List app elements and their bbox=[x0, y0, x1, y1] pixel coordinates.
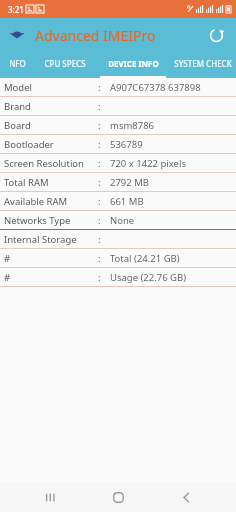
staticText: A907C67378 637898 bbox=[110, 81, 201, 94]
button[interactable]: Screen Resolution bbox=[0, 154, 236, 173]
button[interactable]: Model bbox=[0, 78, 236, 97]
staticText: : bbox=[98, 176, 108, 189]
button[interactable]: Networks Type bbox=[0, 211, 236, 230]
staticText: : bbox=[98, 252, 108, 265]
staticText: Advanced IMEIPro bbox=[35, 26, 156, 45]
button[interactable]: Home bbox=[100, 482, 136, 512]
button[interactable]: # bbox=[0, 249, 236, 268]
staticText: Model bbox=[4, 81, 98, 94]
staticText: 3:21 bbox=[8, 4, 24, 15]
staticText: # bbox=[4, 252, 98, 265]
staticText: 720 x 1422 pixels bbox=[110, 157, 186, 170]
button[interactable]: Refresh bbox=[204, 23, 228, 47]
button[interactable]: NFO bbox=[0, 52, 34, 78]
staticText: DEVICE INFO bbox=[108, 58, 159, 69]
staticText: : bbox=[98, 233, 108, 246]
staticText: Board bbox=[4, 119, 98, 132]
staticText: Internal Storage bbox=[4, 233, 98, 246]
staticText: : bbox=[98, 81, 108, 94]
staticText: : bbox=[98, 195, 108, 208]
button[interactable]: Brand bbox=[0, 97, 236, 116]
button[interactable]: Available RAM bbox=[0, 192, 236, 211]
staticText: Total (24.21 GB) bbox=[110, 252, 180, 265]
staticText: 661 MB bbox=[110, 195, 144, 208]
staticText: 2792 MB bbox=[110, 176, 149, 189]
staticText: msm8786 bbox=[110, 119, 155, 132]
staticText: : bbox=[98, 100, 108, 113]
staticText: 536789 bbox=[110, 138, 143, 151]
staticText: CPU SPECS bbox=[44, 58, 86, 69]
staticText: NFO bbox=[9, 58, 26, 69]
staticText: None bbox=[110, 214, 135, 227]
staticText: Screen Resolution bbox=[4, 157, 98, 170]
button[interactable]: Recent apps bbox=[32, 482, 68, 512]
button[interactable]: DEVICE INFO bbox=[96, 52, 170, 78]
staticText: : bbox=[98, 119, 108, 132]
button[interactable]: SYSTEM CHECK bbox=[170, 52, 236, 78]
staticText: : bbox=[98, 138, 108, 151]
other: App logo bbox=[8, 26, 26, 44]
button[interactable]: CPU SPECS bbox=[34, 52, 96, 78]
staticText: : bbox=[98, 271, 108, 284]
button[interactable]: Total RAM bbox=[0, 173, 236, 192]
staticText: Usage (22.76 GB) bbox=[110, 271, 187, 284]
staticText: Available RAM bbox=[4, 195, 98, 208]
button[interactable]: Internal Storage bbox=[0, 230, 236, 249]
staticText: : bbox=[98, 214, 108, 227]
button[interactable]: Board bbox=[0, 116, 236, 135]
staticText: : bbox=[98, 157, 108, 170]
button[interactable]: # bbox=[0, 268, 236, 287]
staticText: Brand bbox=[4, 100, 98, 113]
staticText: Total RAM bbox=[4, 176, 98, 189]
staticText: Networks Type bbox=[4, 214, 98, 227]
button[interactable]: Bootloader bbox=[0, 135, 236, 154]
button[interactable]: Back bbox=[168, 482, 204, 512]
staticText: # bbox=[4, 271, 98, 284]
staticText: Bootloader bbox=[4, 138, 98, 151]
staticText: SYSTEM CHECK bbox=[174, 58, 232, 69]
